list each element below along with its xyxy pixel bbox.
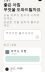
- staticText: 무엇이든 물어보세요: [6, 31, 34, 35]
- staticText: 코드 리뷰: [10, 67, 23, 70]
- staticText: 무엇을 도와드릴까요: [3, 7, 40, 12]
- button[interactable]: 무엇이든 물어보세요: [3, 30, 41, 41]
- button[interactable]: 코드 리뷰: [3, 65, 41, 72]
- staticText: 좋은 아침: [3, 2, 20, 7]
- staticText: 3박 4일 코스: [11, 53, 17, 55]
- staticText: 9:41: [3, 0, 10, 2]
- staticText: 궁금한 것을 편하게 물어보세요: [3, 20, 39, 27]
- button[interactable]: 제주도 여행: [3, 48, 41, 64]
- staticText: 최근 대화: [3, 43, 16, 47]
- staticText: 제주도 여행: [11, 49, 27, 53]
- staticText: 오늘 하루도 힘차게 시작해 보세요: [3, 13, 39, 20]
- staticText: 어제: [10, 70, 12, 72]
